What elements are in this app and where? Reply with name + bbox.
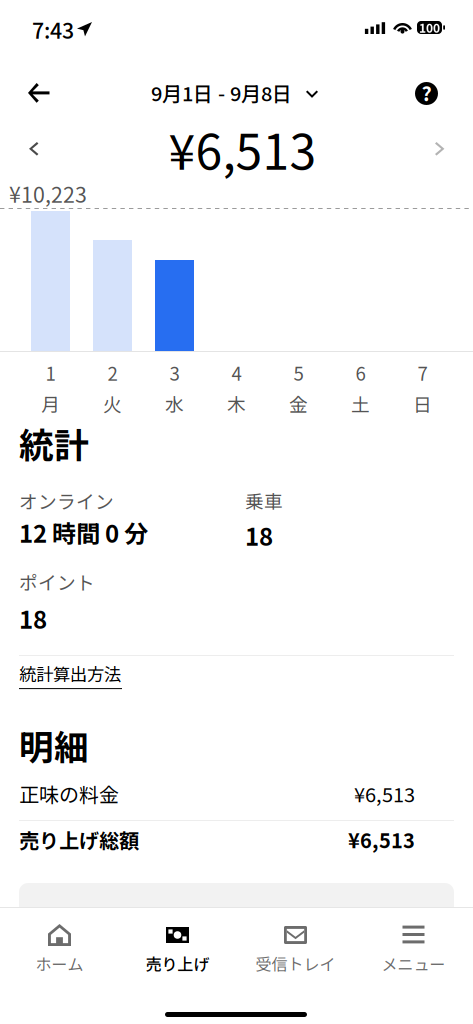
staticText: 日 (413, 390, 432, 417)
staticText: 受信トレイ (255, 952, 335, 975)
button[interactable]: 9月1日 - 9月8日 (143, 70, 326, 115)
staticText: 7:43 (32, 14, 74, 45)
staticText: 統計 (19, 418, 89, 468)
staticText: ¥10,223 (9, 178, 87, 209)
button[interactable]: ホーム (0, 908, 118, 976)
button[interactable]: 統計算出方法 (13, 655, 128, 695)
staticText: ¥6,513 (348, 825, 415, 854)
staticText: 統計算出方法 (19, 661, 121, 686)
staticText: 1 (45, 359, 55, 386)
staticText: 売り上げ (145, 952, 209, 975)
staticText: オンライン (19, 487, 114, 514)
staticText: 水 (165, 390, 184, 417)
button[interactable]: Previous week (17, 130, 51, 168)
staticText: 4 (231, 359, 241, 386)
staticText: 正味の料金 (19, 779, 119, 808)
staticText: ¥6,513 (354, 779, 415, 808)
button[interactable]: 受信トレイ (236, 908, 354, 976)
staticText: 18 (19, 601, 47, 636)
staticText: メニュー (381, 952, 445, 975)
button[interactable]: Next week (423, 130, 457, 168)
staticText: 7 (417, 359, 427, 386)
staticText: ? (421, 78, 431, 107)
staticText: 明細 (19, 720, 89, 770)
staticText: 100 (419, 19, 440, 36)
staticText: 6 (355, 359, 365, 386)
staticText: 乗車 (245, 487, 283, 514)
staticText: ホーム (35, 952, 83, 975)
staticText: 火 (103, 390, 122, 417)
staticText: 9月1日 - 9月8日 (151, 78, 292, 107)
staticText: 5 (293, 359, 303, 386)
staticText: 2 (107, 359, 117, 386)
staticText: 売り上げ総額 (19, 825, 139, 854)
button[interactable]: Help (404, 71, 449, 116)
staticText: 木 (227, 390, 246, 417)
staticText: 3 (169, 359, 179, 386)
button[interactable]: 売り上げ (118, 908, 236, 976)
staticText: 月 (41, 390, 60, 417)
staticText: ポイント (19, 568, 95, 595)
staticText: 18 (245, 518, 273, 553)
staticText: ¥6,513 (168, 114, 316, 183)
button[interactable]: メニュー (354, 908, 472, 976)
button[interactable]: Back (17, 72, 61, 114)
staticText: 金 (289, 390, 308, 417)
staticText: 12 時間 0 分 (19, 515, 148, 550)
staticText: 土 (351, 390, 370, 417)
